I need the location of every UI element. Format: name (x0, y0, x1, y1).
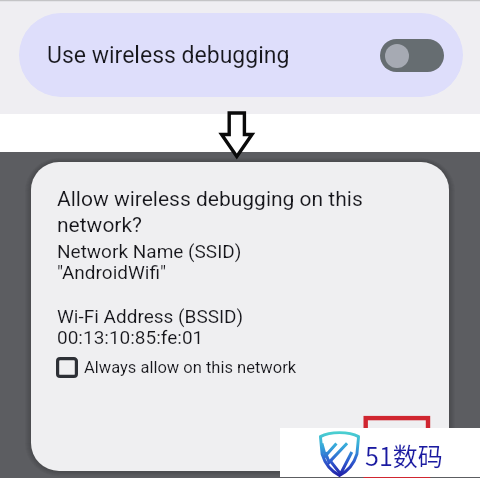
staticText: Allow wireless debugging on this network… (57, 187, 431, 237)
staticText: Wi-Fi Address (BSSID) 00:13:10:85:fe:01 (57, 305, 431, 348)
staticText: Use wireless debugging (47, 42, 290, 69)
button[interactable]: Always allow on this network (56, 357, 297, 378)
button[interactable]: Use wireless debugging (19, 13, 463, 97)
staticText: 51数码 (365, 437, 443, 473)
staticText: Always allow on this network (84, 358, 297, 377)
button[interactable]: Wireless debugging switch, off (380, 39, 444, 72)
staticText: Network Name (SSID) "AndroidWifi" (57, 240, 431, 283)
